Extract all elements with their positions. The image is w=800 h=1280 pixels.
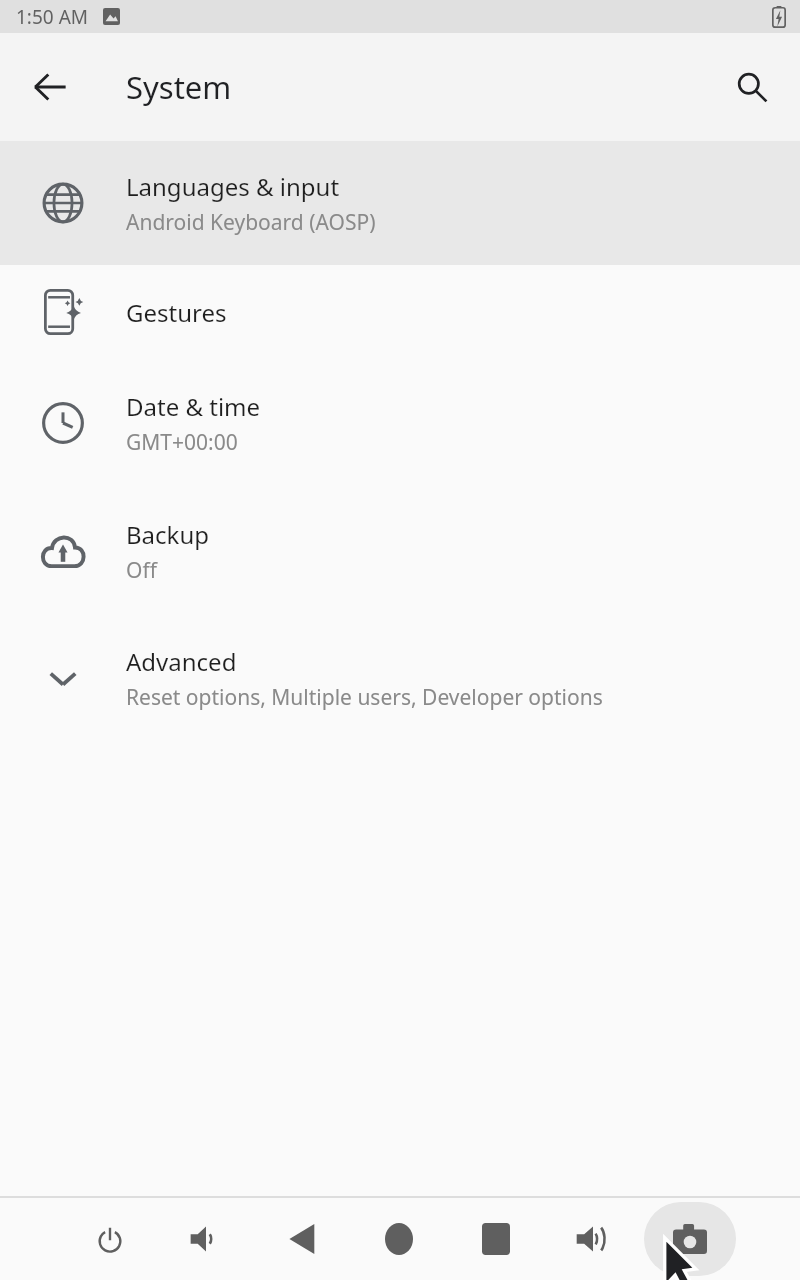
button[interactable]: Gestures [0,265,800,359]
button[interactable]: Back [22,59,78,115]
staticText: 1:50 AM [16,4,89,30]
staticText: Advanced [126,645,237,678]
button[interactable]: Search [724,59,780,115]
button[interactable]: Power [64,1202,156,1276]
button[interactable]: Screenshot [644,1202,736,1276]
staticText: Date & time [126,390,261,423]
button[interactable]: Advanced [0,615,800,741]
staticText: Reset options, Multiple users, Developer… [126,683,603,712]
button[interactable]: Back [256,1202,348,1276]
button[interactable]: Volume up [547,1202,639,1276]
staticText: Gestures [126,296,227,329]
button[interactable]: Date & time [0,359,800,487]
staticText: GMT+00:00 [126,428,238,457]
button[interactable]: Volume down [160,1202,252,1276]
button[interactable]: Home [353,1202,445,1276]
staticText: Android Keyboard (AOSP) [126,208,376,237]
staticText: Off [126,556,157,585]
button[interactable]: Languages & input [0,141,800,265]
button[interactable]: Backup [0,487,800,615]
button[interactable]: Recent apps [450,1202,542,1276]
staticText: Backup [126,518,209,551]
staticText: System [126,66,232,108]
staticText: Languages & input [126,170,340,203]
